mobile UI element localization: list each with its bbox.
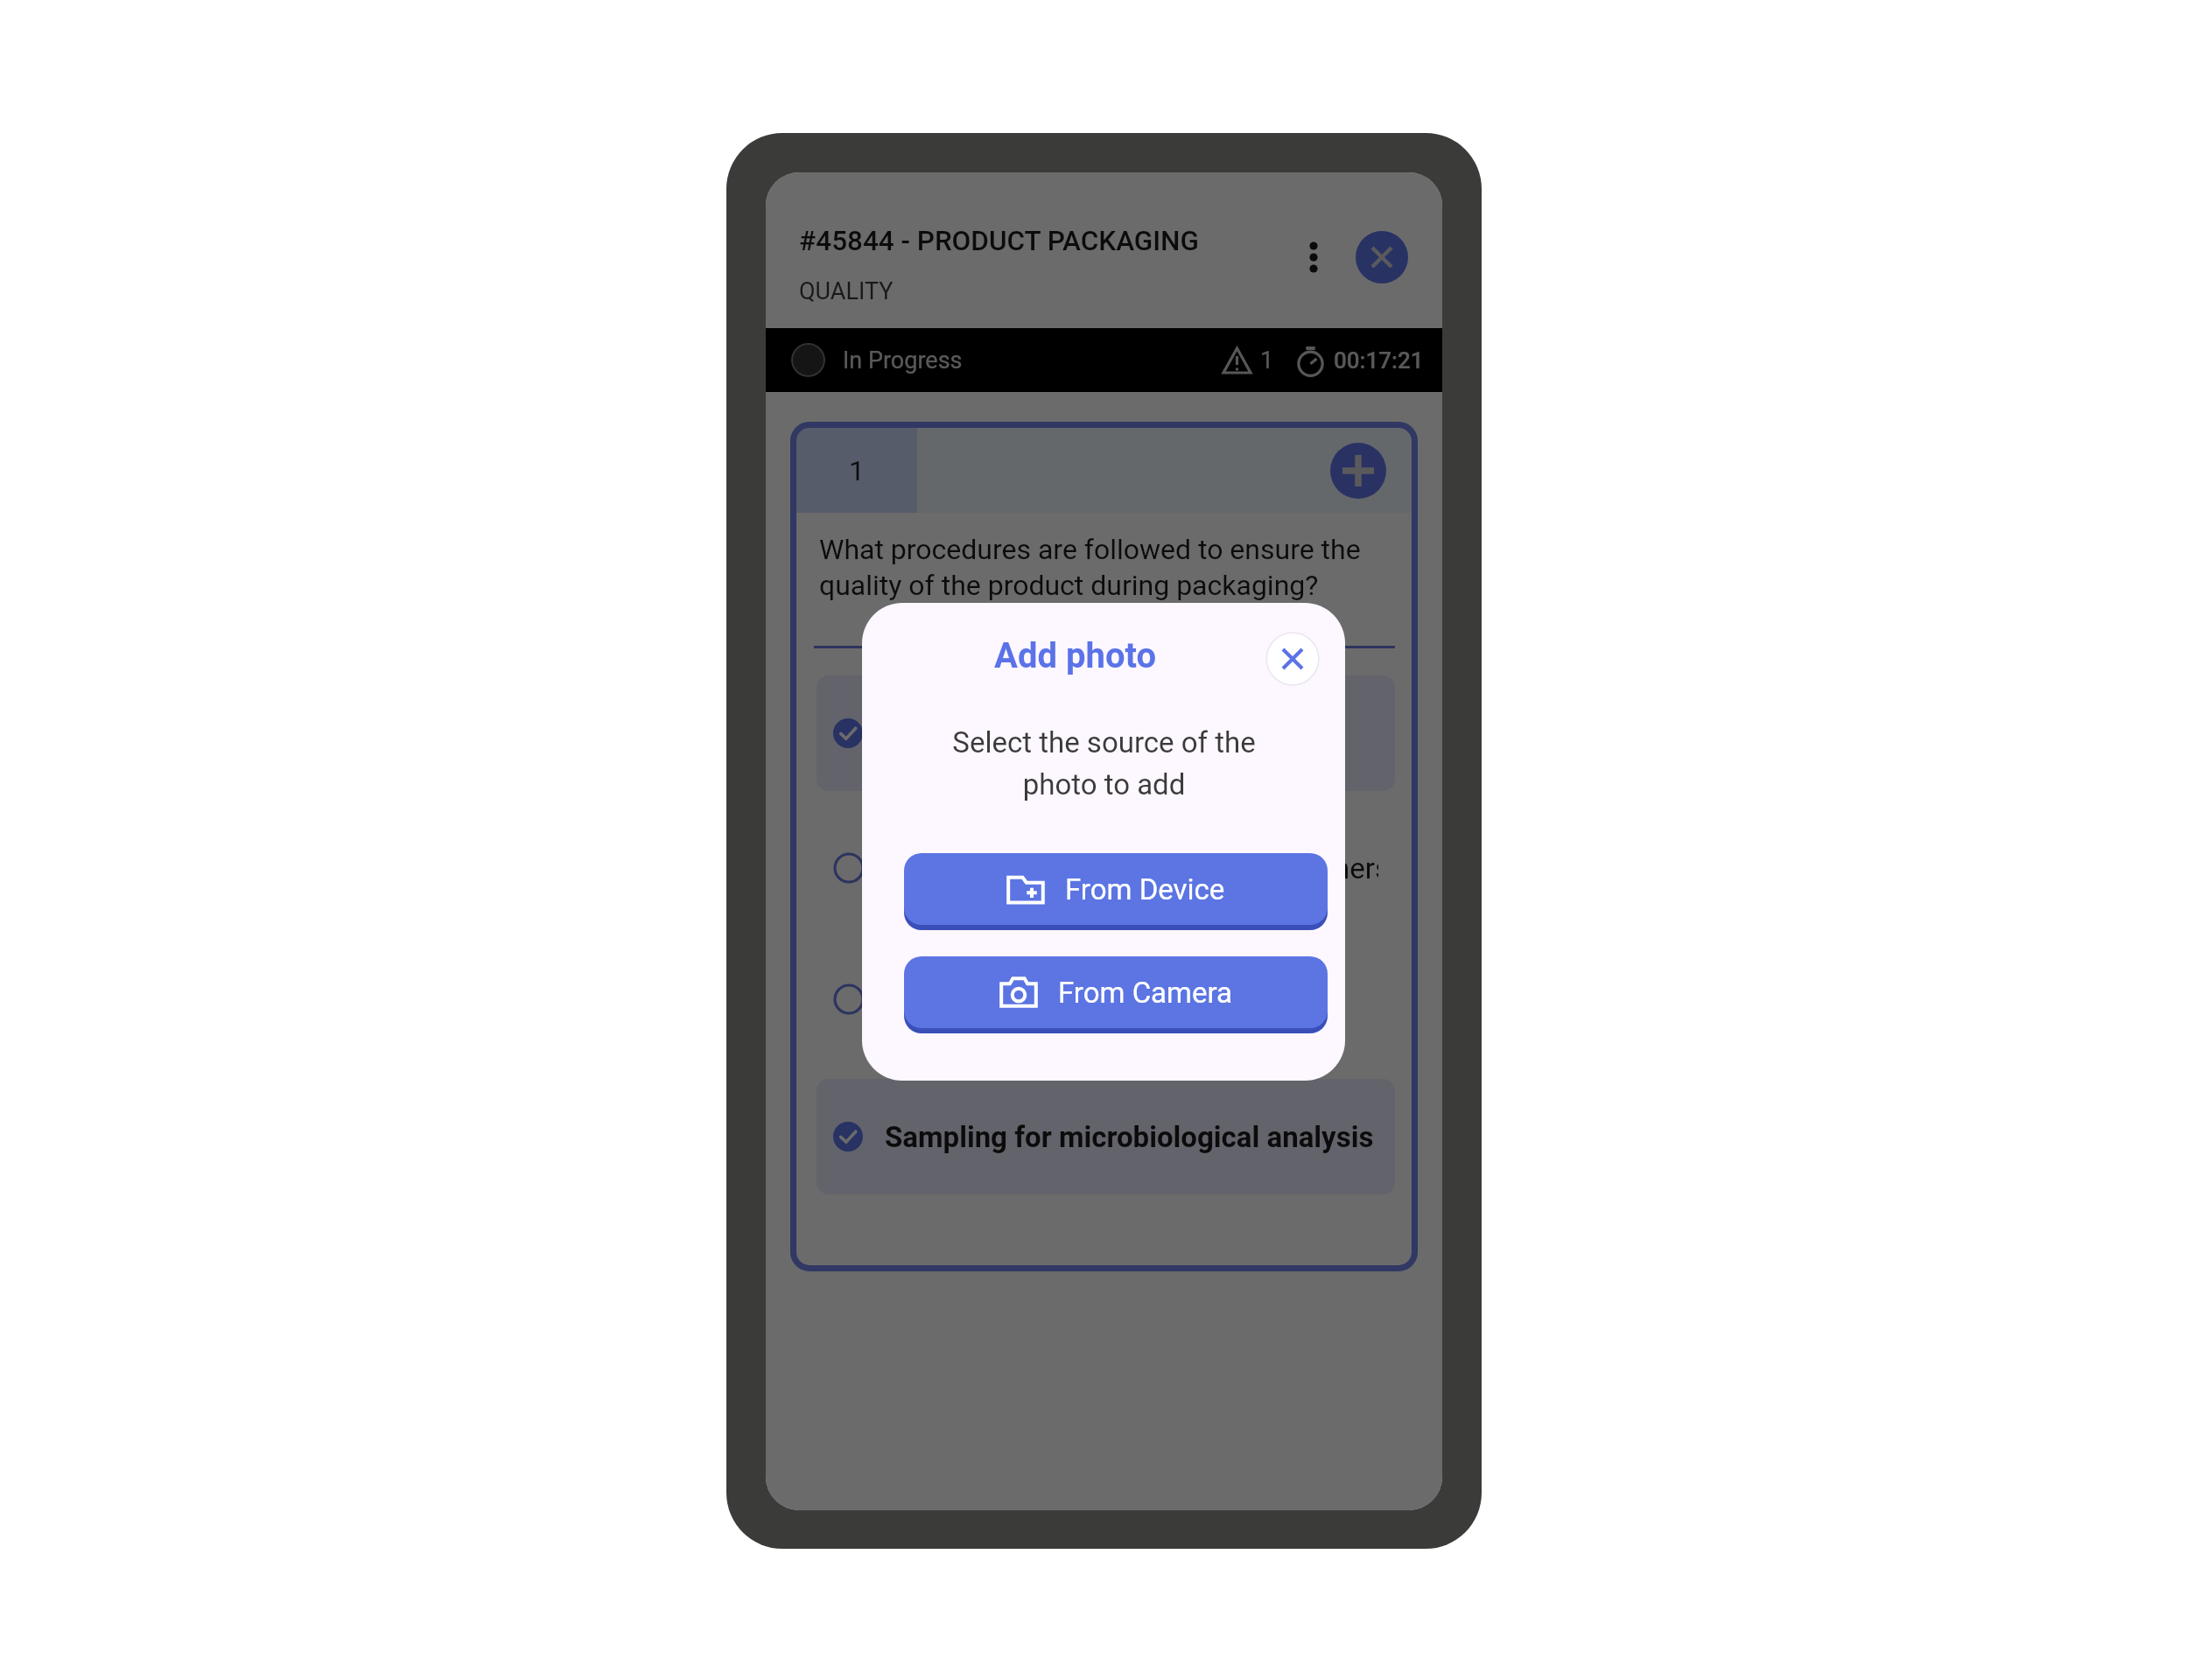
button[interactable]: Close dialog (1265, 632, 1320, 686)
button[interactable]: Close (1356, 231, 1408, 283)
button[interactable]: Seal integrity tests (817, 941, 1395, 1057)
button[interactable]: More options (1287, 231, 1340, 283)
staticText: 1 (849, 454, 865, 487)
button[interactable]: From Device (904, 853, 1328, 925)
staticText: Seal integrity tests (885, 983, 1123, 1017)
button[interactable]: Weight and volume check of containers (817, 810, 1395, 926)
staticText: Weight and volume check of containers (885, 851, 1378, 885)
staticText: From Device (1065, 872, 1225, 906)
button[interactable]: Sampling for microbiological analysis (817, 1079, 1395, 1194)
staticText: Visual inspection of the packaging (885, 717, 1333, 751)
staticText: QUALITY (799, 277, 894, 305)
staticText: #45844 - PRODUCT PACKAGING (799, 225, 1199, 257)
staticText: In Progress (843, 346, 963, 374)
staticText: What procedures are followed to ensure t… (819, 533, 1394, 602)
staticText: Select the source of the photo to add (952, 725, 1256, 801)
button[interactable]: From Camera (904, 956, 1328, 1028)
staticText: Sampling for microbiological analysis (885, 1120, 1374, 1154)
staticText: From Camera (1058, 976, 1232, 1010)
button[interactable]: Add (1330, 443, 1386, 499)
staticText: 1 (1260, 346, 1274, 374)
staticText: Add photo (994, 635, 1157, 676)
staticText: 00:17:21 (1334, 347, 1424, 374)
button[interactable]: In Progress (766, 328, 1442, 392)
button[interactable]: Visual inspection of the packaging (817, 675, 1395, 791)
